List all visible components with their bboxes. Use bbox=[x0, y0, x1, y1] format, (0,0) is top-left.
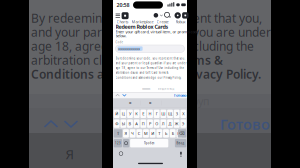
staticText: Н bbox=[148, 111, 151, 116]
staticText: ms & bbox=[193, 52, 223, 68]
staticText: and your parent or legal guardian if you… bbox=[115, 61, 186, 65]
staticText: Ж bbox=[175, 121, 179, 126]
staticText: Ы bbox=[122, 121, 125, 126]
staticText: хх bbox=[149, 101, 151, 105]
staticText: Ввод bbox=[177, 141, 185, 145]
staticText: Charts bbox=[116, 19, 128, 24]
staticText: А bbox=[135, 121, 138, 126]
staticText: О bbox=[155, 121, 158, 126]
staticText: Т bbox=[158, 131, 160, 136]
staticText: Щ bbox=[168, 111, 172, 116]
staticText: В bbox=[128, 121, 131, 126]
staticText: Введите код bbox=[157, 87, 174, 90]
staticText: П bbox=[142, 121, 145, 126]
staticText: Пробел bbox=[144, 141, 155, 145]
staticText: By redeeming bbox=[31, 10, 109, 26]
staticText: cluding the bbox=[193, 38, 254, 54]
staticText: Create bbox=[156, 19, 168, 24]
staticText: Е bbox=[142, 111, 144, 116]
staticText: С bbox=[138, 131, 141, 136]
staticText: ent that you, bbox=[193, 10, 262, 26]
staticText: arbitration clau bbox=[31, 52, 116, 68]
staticText: 123 bbox=[115, 141, 121, 145]
staticText: Г bbox=[156, 111, 158, 116]
staticText: К bbox=[135, 111, 138, 116]
staticText: xxxxxxxx bbox=[142, 87, 150, 90]
staticText: З bbox=[176, 111, 178, 116]
staticText: Э bbox=[182, 121, 185, 126]
staticText: руп bbox=[192, 94, 209, 108]
staticText: Ч bbox=[131, 131, 134, 136]
staticText: Conditions and acknowledge our Privacy P… bbox=[115, 76, 181, 79]
staticText: age 18, agree to our Terms of Use includ… bbox=[115, 66, 184, 70]
staticText: Ю bbox=[177, 131, 181, 136]
staticText: xxxxxxxxxxx bbox=[118, 46, 140, 51]
staticText: Robux bbox=[175, 19, 185, 24]
staticText: you are under bbox=[193, 24, 271, 40]
staticText: Conditions and bbox=[31, 66, 120, 82]
staticText: ⇧ bbox=[116, 131, 119, 136]
staticText: Б bbox=[172, 131, 174, 136]
staticText: Ф bbox=[115, 121, 118, 126]
staticText: Ь bbox=[165, 131, 167, 136]
staticText: “xx” bbox=[128, 101, 132, 105]
staticText: И bbox=[151, 131, 154, 136]
staticText: arbitration clause and Gift Card Terms & bbox=[115, 71, 168, 74]
staticText: Redeem Roblox Cards bbox=[115, 23, 168, 30]
staticText: У bbox=[129, 111, 131, 116]
staticText: below. bbox=[115, 33, 126, 38]
staticText: Готово bbox=[174, 92, 186, 98]
staticText: 20:58 bbox=[116, 1, 129, 9]
staticText: Я bbox=[124, 131, 127, 136]
staticText: Marketplace bbox=[131, 19, 153, 24]
staticText: Х bbox=[182, 111, 184, 116]
staticText: age 18, agree t bbox=[31, 38, 115, 54]
staticText: Д bbox=[168, 121, 171, 126]
staticText: Р bbox=[149, 121, 151, 126]
staticText: ⌫ bbox=[179, 131, 185, 136]
staticText: Enter your gift card, virtual item, or p… bbox=[115, 29, 198, 34]
staticText: ivacy Policy. bbox=[193, 66, 261, 82]
staticText: and your paren bbox=[31, 24, 116, 40]
staticText: Й bbox=[115, 111, 118, 116]
staticText: Ц bbox=[122, 111, 125, 116]
staticText: Ш bbox=[161, 111, 165, 116]
staticText: By redeeming your code, you represent th… bbox=[115, 57, 185, 60]
staticText: Code bbox=[115, 40, 123, 44]
staticText: М bbox=[144, 131, 148, 136]
staticText: Готово bbox=[220, 114, 270, 134]
staticText: Я bbox=[65, 145, 74, 163]
staticText: Л bbox=[162, 121, 165, 126]
